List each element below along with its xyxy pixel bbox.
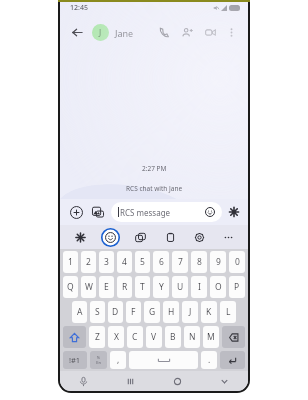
staticText: 7 bbox=[178, 256, 183, 268]
button[interactable]: Gallery bbox=[88, 202, 108, 222]
button[interactable]: Emoji bbox=[99, 226, 121, 248]
button[interactable]: O bbox=[210, 276, 226, 298]
staticText: 12:45 bbox=[70, 3, 88, 13]
staticText: N bbox=[189, 331, 196, 343]
staticText: G bbox=[149, 306, 156, 318]
staticText: I bbox=[198, 281, 201, 293]
staticText: . bbox=[208, 354, 211, 366]
staticText: O bbox=[215, 281, 222, 293]
staticText: K bbox=[206, 306, 212, 318]
button[interactable]: 9 bbox=[210, 251, 226, 273]
staticText: !#1 bbox=[69, 355, 81, 365]
button[interactable]: J bbox=[92, 24, 154, 41]
button[interactable]: RCS message bbox=[111, 202, 222, 222]
button[interactable]: Settings bbox=[189, 227, 209, 247]
button[interactable]: Video call bbox=[200, 22, 220, 42]
button[interactable]: X bbox=[108, 326, 124, 348]
button[interactable]: B bbox=[165, 326, 181, 348]
staticText: T bbox=[140, 281, 145, 293]
button[interactable]: G bbox=[144, 301, 160, 323]
button[interactable]: 8 bbox=[191, 251, 207, 273]
button[interactable]: Back bbox=[67, 22, 87, 42]
staticText: 6 bbox=[159, 256, 164, 268]
staticText: W bbox=[85, 281, 93, 293]
button[interactable]: 0 bbox=[229, 251, 245, 273]
staticText: F bbox=[131, 306, 136, 318]
button[interactable]: GIF bbox=[130, 227, 150, 247]
button[interactable]: S bbox=[90, 301, 105, 323]
button[interactable]: 5 bbox=[135, 251, 150, 273]
button[interactable]: U bbox=[172, 276, 188, 298]
button[interactable]: Add person bbox=[177, 22, 197, 42]
button[interactable]: Hide keyboard bbox=[201, 371, 248, 391]
button[interactable]: , bbox=[110, 351, 126, 369]
button[interactable]: 7 bbox=[172, 251, 188, 273]
button[interactable]: Q bbox=[63, 276, 78, 298]
button[interactable]: . bbox=[201, 351, 217, 369]
button[interactable]: More bbox=[218, 227, 238, 247]
button[interactable]: Space bbox=[129, 351, 198, 369]
staticText: Y bbox=[159, 281, 164, 293]
button[interactable]: E bbox=[99, 276, 114, 298]
button[interactable]: Home bbox=[154, 371, 201, 391]
button[interactable]: Recent apps bbox=[107, 371, 154, 391]
staticText: 2:27 PM bbox=[142, 164, 167, 173]
button[interactable]: 6 bbox=[153, 251, 169, 273]
staticText: 1 bbox=[68, 256, 73, 268]
button[interactable]: N bbox=[184, 326, 200, 348]
button[interactable]: M bbox=[203, 326, 219, 348]
button[interactable]: Shift bbox=[63, 326, 86, 348]
staticText: H bbox=[168, 306, 175, 318]
staticText: X bbox=[114, 331, 119, 343]
button[interactable]: Stickers bbox=[226, 204, 242, 220]
button[interactable]: Z bbox=[89, 326, 105, 348]
button[interactable]: W bbox=[81, 276, 96, 298]
staticText: S bbox=[95, 306, 100, 318]
button[interactable]: Microphone bbox=[60, 371, 107, 391]
button[interactable]: R bbox=[117, 276, 132, 298]
button[interactable]: Call bbox=[154, 22, 174, 42]
staticText: J bbox=[99, 27, 102, 38]
button[interactable]: Y bbox=[153, 276, 169, 298]
button[interactable]: Backspace bbox=[222, 326, 245, 348]
staticText: Q bbox=[67, 281, 74, 293]
staticText: Jane bbox=[115, 27, 134, 39]
staticText: E bbox=[104, 281, 109, 293]
button[interactable]: I bbox=[191, 276, 207, 298]
button[interactable]: !#1 bbox=[63, 351, 87, 369]
staticText: 0 bbox=[235, 256, 240, 268]
button[interactable]: Attach bbox=[66, 202, 86, 222]
staticText: P bbox=[234, 281, 240, 293]
staticText: B bbox=[170, 331, 176, 343]
button[interactable]: Stickers bbox=[70, 227, 90, 247]
button[interactable]: 4 bbox=[117, 251, 132, 273]
button[interactable]: P bbox=[229, 276, 245, 298]
staticText: 3 bbox=[104, 256, 109, 268]
staticText: % En bbox=[96, 355, 101, 365]
button[interactable]: V bbox=[146, 326, 162, 348]
staticText: RCS message bbox=[120, 207, 205, 218]
button[interactable]: Clipboard bbox=[160, 227, 180, 247]
button[interactable]: T bbox=[135, 276, 150, 298]
button[interactable]: L bbox=[220, 301, 236, 323]
button[interactable]: 3 bbox=[99, 251, 114, 273]
button[interactable]: F bbox=[126, 301, 141, 323]
button[interactable]: D bbox=[108, 301, 123, 323]
staticText: Z bbox=[95, 331, 100, 343]
button[interactable]: H bbox=[163, 301, 179, 323]
button[interactable]: Language bbox=[90, 351, 107, 369]
button[interactable]: More options bbox=[221, 22, 241, 42]
button[interactable]: Enter bbox=[220, 351, 245, 369]
staticText: 9 bbox=[216, 256, 221, 268]
button[interactable]: C bbox=[127, 326, 143, 348]
staticText: 5 bbox=[140, 256, 145, 268]
staticText: R bbox=[122, 281, 128, 293]
staticText: 2 bbox=[86, 256, 91, 268]
button[interactable]: 2 bbox=[81, 251, 96, 273]
button[interactable]: 1 bbox=[63, 251, 78, 273]
button[interactable]: K bbox=[201, 301, 217, 323]
staticText: RCS chat with Jane bbox=[126, 184, 183, 193]
staticText: A bbox=[77, 306, 83, 318]
button[interactable]: A bbox=[72, 301, 87, 323]
button[interactable]: J bbox=[182, 301, 198, 323]
